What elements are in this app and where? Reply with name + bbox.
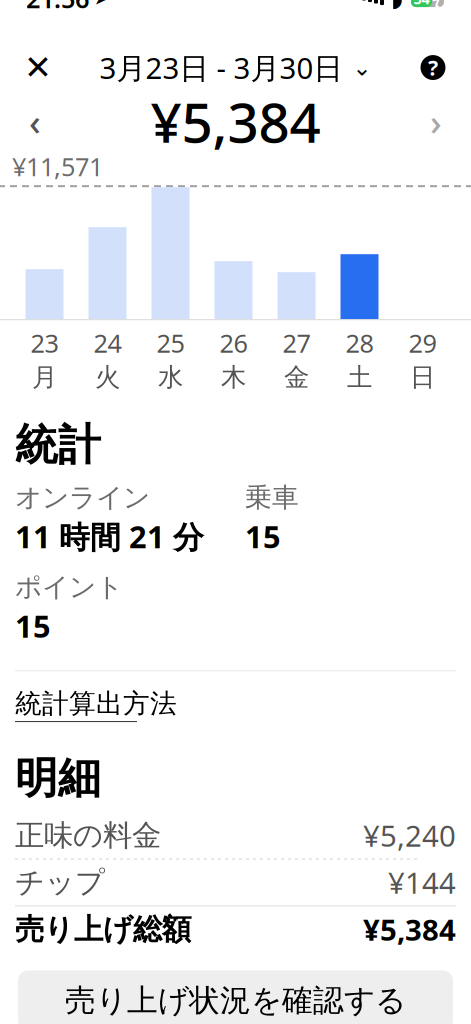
- staticText: 金: [284, 362, 309, 393]
- staticText: 火: [95, 362, 120, 393]
- button[interactable]: 売り上げ状況を確認する: [18, 970, 453, 1024]
- staticText: 15: [245, 516, 281, 557]
- staticText: 26: [219, 326, 247, 360]
- staticText: 木: [221, 362, 246, 393]
- staticText: オンライン: [15, 481, 150, 514]
- staticText: 29: [408, 326, 436, 360]
- staticText: 正味の料金: [15, 817, 161, 853]
- staticText: 統計算出方法: [15, 687, 177, 720]
- staticText: 11 時間 21 分: [15, 516, 204, 557]
- button[interactable]: 閉じる: [10, 41, 66, 93]
- button[interactable]: 次の週: [409, 95, 463, 147]
- staticText: 27: [282, 326, 310, 360]
- staticText: ϟ: [432, 0, 440, 8]
- staticText: ポイント: [15, 571, 123, 604]
- staticText: 21:56: [26, 0, 89, 15]
- staticText: 28: [345, 326, 373, 360]
- staticText: ◗: [391, 0, 403, 11]
- staticText: 月: [32, 362, 57, 393]
- staticText: 統計: [15, 419, 101, 471]
- button[interactable]: 3月23日 - 3月30日: [93, 41, 377, 93]
- staticText: 売り上げ総額: [15, 911, 191, 947]
- staticText: ¥144: [388, 863, 456, 902]
- button[interactable]: 前の週: [8, 95, 62, 147]
- staticText: 3月23日 - 3月30日: [99, 48, 342, 87]
- staticText: 15: [15, 606, 51, 646]
- staticText: ?: [428, 53, 438, 82]
- staticText: 土: [347, 362, 372, 393]
- staticText: ➤: [94, 0, 109, 8]
- staticText: ›: [430, 98, 442, 145]
- staticText: ✕: [24, 49, 52, 86]
- staticText: ⌄: [352, 55, 371, 80]
- button[interactable]: ヘルプ: [405, 41, 461, 93]
- staticText: 54: [413, 0, 429, 8]
- staticText: ¥11,571: [12, 149, 103, 183]
- staticText: 水: [158, 362, 183, 393]
- staticText: 25: [156, 326, 184, 360]
- staticText: ¥5,384: [150, 85, 320, 158]
- staticText: 23: [30, 326, 58, 360]
- staticText: 乗車: [245, 481, 299, 514]
- staticText: 売り上げ状況を確認する: [65, 982, 406, 1019]
- staticText: ‹: [29, 98, 41, 145]
- staticText: 日: [410, 362, 435, 393]
- staticText: チップ: [15, 864, 105, 900]
- staticText: ¥5,240: [363, 816, 456, 855]
- staticText: 明細: [15, 752, 101, 804]
- staticText: ¥5,384: [363, 910, 456, 949]
- staticText: 24: [93, 326, 121, 360]
- button[interactable]: 統計算出方法: [15, 671, 177, 726]
